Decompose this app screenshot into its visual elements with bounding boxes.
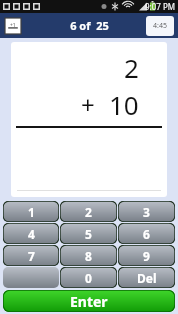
button[interactable]: 5 (60, 223, 117, 244)
button[interactable] (3, 267, 59, 288)
staticText: Del (137, 270, 157, 286)
staticText: 7 (28, 248, 35, 264)
button[interactable]: 1 (3, 201, 59, 222)
button[interactable]: App icon (5, 18, 21, 34)
staticText: 8 (85, 248, 92, 264)
staticText: 6 (143, 226, 150, 242)
button[interactable]: Enter (3, 290, 175, 312)
staticText: 10 (109, 87, 139, 122)
staticText: +1 (10, 22, 16, 29)
staticText: + (81, 88, 95, 121)
button[interactable]: 8 (60, 245, 117, 266)
button[interactable]: 7 (3, 245, 59, 266)
staticText: 6 of 25 (70, 18, 109, 33)
staticText: 4:45 (153, 21, 167, 31)
button[interactable]: 4:45 (146, 16, 174, 36)
staticText: 2 (85, 204, 92, 220)
staticText: 3 (143, 204, 150, 220)
staticText: 2 (124, 50, 139, 85)
button[interactable]: Del (118, 267, 175, 288)
staticText: 0 (85, 270, 92, 286)
button[interactable]: 2 (60, 201, 117, 222)
button[interactable]: 6 (118, 223, 175, 244)
staticText: 1 (28, 204, 35, 220)
staticText: 4 (28, 226, 35, 242)
staticText: Enter (70, 292, 108, 311)
button[interactable]: 9 (118, 245, 175, 266)
button[interactable]: 0 (60, 267, 117, 288)
staticText: 5 (85, 226, 92, 242)
button[interactable]: 4 (3, 223, 59, 244)
button[interactable]: 3 (118, 201, 175, 222)
staticText: 9 (143, 248, 150, 264)
staticText: 9:07 PM (145, 1, 176, 12)
